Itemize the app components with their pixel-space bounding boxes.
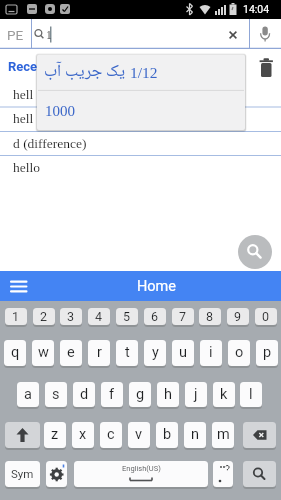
button[interactable]: c xyxy=(100,422,122,449)
staticText: o xyxy=(235,344,244,361)
button[interactable] xyxy=(37,54,245,90)
staticText: k xyxy=(220,386,228,403)
staticText: a xyxy=(24,386,32,403)
button[interactable]: j xyxy=(185,382,207,408)
button[interactable]: 8 xyxy=(199,308,221,326)
staticText: 4 xyxy=(95,309,103,324)
button[interactable]: t xyxy=(116,340,138,367)
staticText: hell xyxy=(13,111,34,126)
button[interactable]: p xyxy=(256,340,278,367)
button[interactable]: s xyxy=(45,382,67,408)
button[interactable] xyxy=(0,132,281,155)
button[interactable]: e xyxy=(60,340,82,367)
button[interactable]: u xyxy=(172,340,194,367)
button[interactable]: x xyxy=(72,422,94,449)
staticText: 6 xyxy=(151,309,159,324)
button[interactable] xyxy=(238,235,272,269)
button[interactable]: 6 xyxy=(144,308,166,326)
button[interactable]: 9 xyxy=(227,308,249,326)
button[interactable] xyxy=(37,90,245,130)
staticText: 1000 xyxy=(45,103,75,120)
button[interactable]: Home xyxy=(120,271,194,301)
staticText: 1 xyxy=(12,309,20,324)
button[interactable]: v xyxy=(128,422,150,449)
button[interactable] xyxy=(243,422,276,449)
button[interactable]: 3 xyxy=(60,308,82,326)
button[interactable] xyxy=(0,19,31,49)
staticText: c xyxy=(107,426,115,443)
staticText: Home xyxy=(137,278,177,295)
button[interactable]: a xyxy=(17,382,39,408)
staticText: q xyxy=(11,344,20,361)
button[interactable]: z xyxy=(44,422,66,449)
button[interactable]: q xyxy=(4,340,26,367)
button[interactable]: f xyxy=(101,382,123,408)
button[interactable]: h xyxy=(157,382,179,408)
button[interactable]: Sym xyxy=(5,461,40,488)
button[interactable]: b xyxy=(156,422,178,449)
staticText: t xyxy=(125,344,130,361)
button[interactable] xyxy=(256,56,276,80)
button[interactable]: 4 xyxy=(88,308,110,326)
button[interactable]: d xyxy=(73,382,95,408)
staticText: s xyxy=(52,386,60,403)
staticText: g xyxy=(136,386,145,403)
button[interactable] xyxy=(0,107,281,131)
staticText: English(US) xyxy=(122,464,161,473)
button[interactable]: 2 xyxy=(33,308,55,326)
staticText: w xyxy=(38,344,49,361)
button[interactable] xyxy=(222,19,250,49)
staticText: y xyxy=(152,344,159,361)
staticText: h xyxy=(164,386,172,403)
button[interactable]: o xyxy=(228,340,250,367)
button[interactable]: l xyxy=(240,382,262,408)
button[interactable] xyxy=(4,275,42,297)
button[interactable]: 5 xyxy=(116,308,138,326)
button[interactable] xyxy=(0,83,281,107)
staticText: d (difference) xyxy=(13,136,87,151)
staticText: m xyxy=(217,426,230,443)
button[interactable] xyxy=(46,461,67,488)
button[interactable] xyxy=(243,461,276,488)
staticText: 14:04 xyxy=(243,3,270,15)
button[interactable]: 7 xyxy=(172,308,194,326)
staticText: d xyxy=(80,386,89,403)
staticText: i xyxy=(209,344,213,361)
staticText: یک جریب آب xyxy=(44,58,126,87)
staticText: z xyxy=(51,426,59,443)
button[interactable]: m xyxy=(212,422,234,449)
staticText: 5 xyxy=(123,309,131,324)
button[interactable] xyxy=(213,461,233,488)
staticText: hell xyxy=(13,87,34,102)
staticText: 7 xyxy=(179,309,187,324)
button[interactable]: 1 xyxy=(5,308,27,326)
staticText: 1/12 xyxy=(130,64,158,81)
button[interactable]: g xyxy=(129,382,151,408)
staticText: Recent xyxy=(8,59,49,74)
button[interactable] xyxy=(250,19,281,49)
button[interactable]: English(US) xyxy=(74,461,208,488)
staticText: v xyxy=(135,426,143,443)
staticText: Sym xyxy=(11,467,34,480)
button[interactable]: 0 xyxy=(255,308,277,326)
staticText: 1 xyxy=(46,29,52,42)
staticText: 3 xyxy=(67,309,75,324)
staticText: x xyxy=(79,426,87,443)
button[interactable]: n xyxy=(184,422,206,449)
button[interactable]: w xyxy=(32,340,54,367)
staticText: p xyxy=(263,344,272,361)
button[interactable]: r xyxy=(88,340,110,367)
staticText: hello xyxy=(13,160,40,175)
staticText: PE xyxy=(7,27,24,43)
staticText: l xyxy=(249,386,253,403)
button[interactable]: i xyxy=(200,340,222,367)
staticText: 9 xyxy=(234,309,242,324)
button[interactable]: k xyxy=(213,382,235,408)
staticText: f xyxy=(109,386,115,403)
staticText: j xyxy=(194,386,198,403)
button[interactable] xyxy=(0,156,281,180)
staticText: 0 xyxy=(262,309,270,324)
staticText: 2 xyxy=(40,309,48,324)
button[interactable] xyxy=(5,422,40,449)
button[interactable]: y xyxy=(144,340,166,367)
